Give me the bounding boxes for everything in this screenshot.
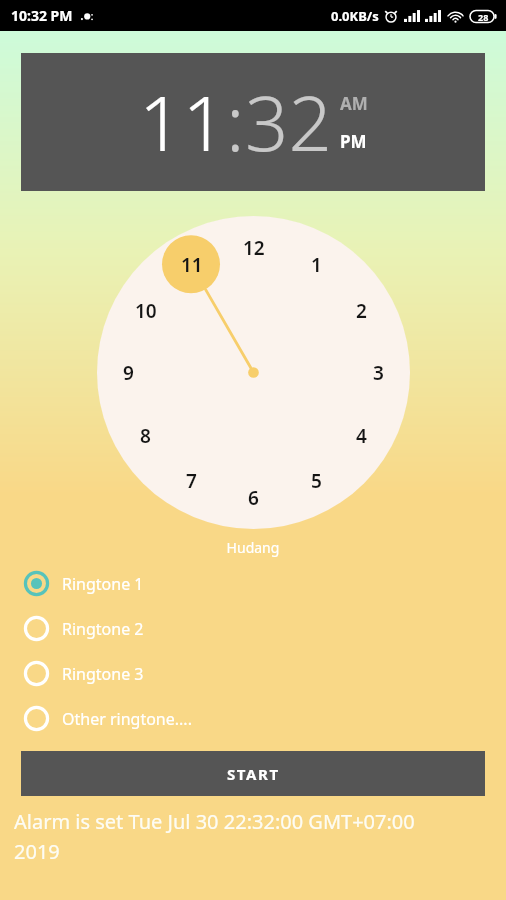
button[interactable]: START	[21, 751, 485, 796]
button[interactable]: 8	[140, 423, 151, 449]
staticText: 10:32 PM	[11, 6, 73, 25]
button[interactable]: 7	[186, 468, 197, 494]
button[interactable]: 2	[356, 298, 367, 324]
button[interactable]: 6	[248, 485, 259, 511]
button[interactable]: Ringtone 2	[0, 606, 506, 651]
staticText: :	[226, 70, 245, 174]
button[interactable]: AM	[340, 92, 368, 115]
button[interactable]: 32	[245, 70, 332, 174]
button[interactable]: Clock face, select hour	[97, 216, 410, 529]
button[interactable]: 12	[243, 235, 265, 261]
staticText: START	[227, 764, 280, 784]
button[interactable]: 5	[311, 468, 322, 494]
staticText: Alarm is set Tue Jul 30 22:32:00 GMT+07:…	[14, 808, 434, 865]
button[interactable]: 10	[135, 298, 157, 324]
button[interactable]: 11	[21, 53, 485, 191]
button[interactable]: Other ringtone....	[0, 696, 506, 741]
staticText: Hudang	[0, 538, 506, 557]
staticText: Ringtone 3	[62, 663, 144, 685]
button[interactable]: 11	[139, 70, 226, 174]
button[interactable]: 3	[373, 360, 384, 386]
staticText: Ringtone 2	[62, 618, 144, 640]
staticText: 28	[478, 11, 489, 23]
button[interactable]: 4	[356, 423, 367, 449]
staticText: 0.0KB/s	[331, 7, 379, 25]
button[interactable]: 9	[123, 360, 134, 386]
button[interactable]: 11	[181, 252, 203, 278]
button[interactable]: PM	[340, 130, 367, 153]
staticText: Ringtone 1	[62, 573, 144, 595]
staticText: Other ringtone....	[62, 708, 192, 730]
button[interactable]: 1	[311, 252, 322, 278]
button[interactable]: Ringtone 1	[0, 561, 506, 606]
button[interactable]: Ringtone 3	[0, 651, 506, 696]
